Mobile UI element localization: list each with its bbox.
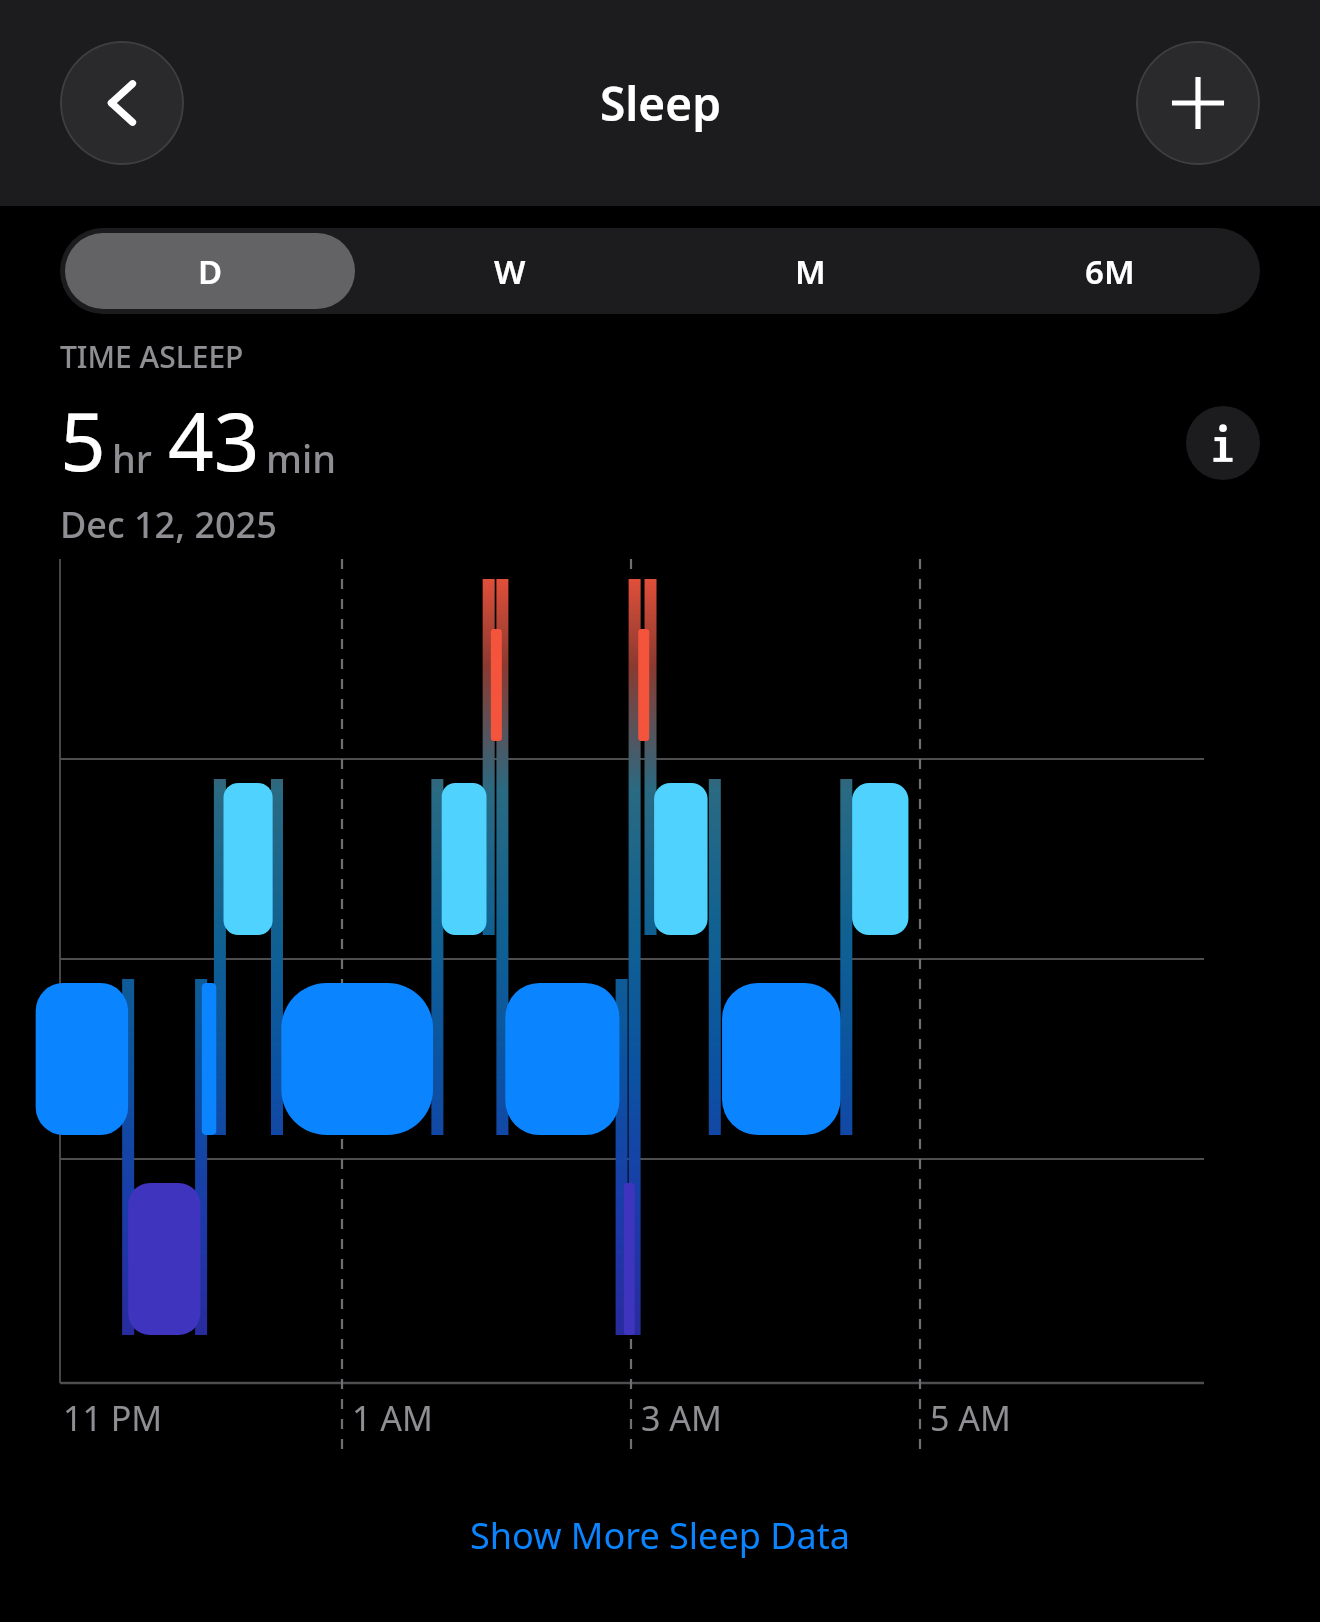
button[interactable]: Show More Sleep Data [0, 1495, 1320, 1576]
button[interactable]: Back [60, 41, 184, 165]
button[interactable]: W [365, 233, 655, 309]
staticText: 11 PM [63, 1395, 163, 1441]
button[interactable]: D [65, 233, 355, 309]
staticText: 3 AM [641, 1395, 722, 1441]
staticText: D [198, 249, 223, 294]
staticText: 5 [60, 385, 106, 494]
button[interactable]: M [665, 233, 955, 309]
staticText: W [494, 249, 526, 294]
button[interactable]: Info [1186, 406, 1260, 480]
staticText: 43 [168, 385, 260, 494]
button[interactable]: Add [1136, 41, 1260, 165]
staticText: 6M [1085, 249, 1135, 294]
staticText: TIME ASLEEP [60, 336, 244, 377]
staticText: M [795, 249, 826, 294]
staticText: Dec 12, 2025 [60, 500, 277, 549]
button[interactable]: 6M [965, 233, 1255, 309]
staticText: min [266, 432, 337, 484]
staticText: Sleep [600, 72, 721, 135]
staticText: 5 AM [930, 1395, 1011, 1441]
staticText: hr [112, 432, 152, 484]
staticText: 1 AM [352, 1395, 433, 1441]
